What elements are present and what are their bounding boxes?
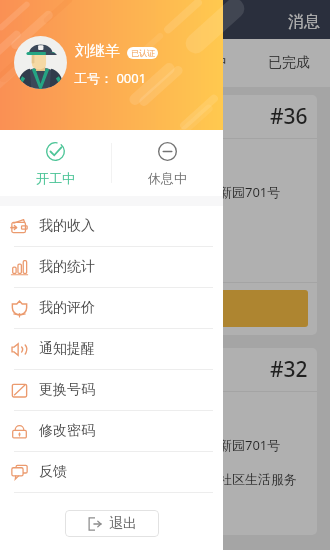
staticText: 进行中 xyxy=(185,54,227,72)
button[interactable]: 我的评价 xyxy=(0,288,223,329)
staticText: 订单号 xyxy=(24,362,63,378)
button[interactable]: 我的统计 xyxy=(0,247,223,288)
button[interactable]: 休息中 xyxy=(112,130,223,196)
staticText: 反馈 xyxy=(39,463,67,481)
staticText: 消息 xyxy=(288,12,320,32)
button[interactable]: 订单号 xyxy=(12,348,317,535)
staticText: 已完成 xyxy=(268,54,310,72)
staticText: 退出 xyxy=(109,515,137,533)
staticText: 修改密码 xyxy=(39,422,95,440)
staticText: 我的评价 xyxy=(39,299,95,317)
button[interactable]: 待派单 xyxy=(0,39,82,87)
staticText: 工号： 0001 xyxy=(74,69,147,87)
button[interactable]: 已完成 xyxy=(248,39,330,87)
button[interactable]: 待接单 xyxy=(83,39,165,87)
staticText: 通知提醒 xyxy=(39,340,95,358)
staticText: 我的收入 xyxy=(39,217,95,235)
button[interactable]: 我的收入 xyxy=(0,206,223,247)
staticText: 开工中 xyxy=(36,170,75,186)
button[interactable]: 反馈 xyxy=(0,452,223,493)
staticText: 刘继羊 xyxy=(75,42,120,61)
button[interactable]: 接单 xyxy=(22,290,308,327)
button[interactable]: 退出 xyxy=(65,510,159,537)
button[interactable]: 更换号码 xyxy=(0,370,223,411)
button[interactable]: 进行中 xyxy=(165,39,247,87)
staticText: 更换号码 xyxy=(39,381,95,399)
button[interactable]: 开工中 xyxy=(0,130,111,196)
staticText: 深圳市万科物业管理有限公司龙华社区生活服务 xyxy=(24,471,297,487)
staticText: 待接单 xyxy=(103,54,145,72)
staticText: #36 xyxy=(270,102,308,131)
button[interactable]: 修改密码 xyxy=(0,411,223,452)
button[interactable]: 通知提醒 xyxy=(0,329,223,370)
staticText: 广东省深圳市南山区科苑路智慧创新园701号 xyxy=(24,183,281,201)
button[interactable]: 订单号 xyxy=(12,95,317,335)
staticText: 我的统计 xyxy=(39,258,95,276)
button[interactable]: 消息 xyxy=(0,0,330,39)
staticText: 市民广场服务点 xyxy=(24,218,115,234)
staticText: 已认证 xyxy=(131,48,155,58)
staticText: 休息中 xyxy=(148,170,187,186)
staticText: 待派单 xyxy=(20,54,62,72)
staticText: #32 xyxy=(270,355,308,384)
staticText: 广东省深圳市南山区科苑路智慧创新园701号 xyxy=(24,436,281,454)
